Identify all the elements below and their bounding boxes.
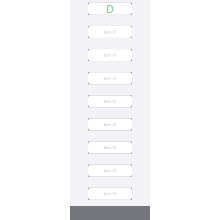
- button[interactable]: Item 01: [88, 165, 132, 177]
- button[interactable]: D: [88, 3, 132, 15]
- button[interactable]: Item 01: [88, 72, 132, 84]
- staticText: Item 01: [103, 145, 116, 150]
- button[interactable]: Item 01: [88, 95, 132, 107]
- button[interactable]: Item 01: [88, 118, 132, 130]
- button[interactable]: Item 01: [88, 142, 132, 154]
- staticText: D: [106, 2, 114, 16]
- staticText: Item 01: [103, 75, 116, 81]
- staticText: Item 01: [103, 29, 116, 35]
- staticText: Item 01: [103, 168, 116, 173]
- staticText: Item 01: [103, 99, 116, 104]
- staticText: Item 01: [103, 191, 116, 196]
- button[interactable]: Item 01: [88, 49, 132, 61]
- staticText: Item 01: [103, 52, 116, 58]
- button[interactable]: Item 01: [88, 188, 132, 200]
- staticText: Item 01: [103, 122, 116, 127]
- button[interactable]: Item 01: [88, 26, 132, 38]
